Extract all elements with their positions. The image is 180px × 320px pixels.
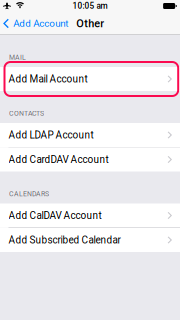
staticText: Add LDAP Account — [8, 129, 93, 141]
staticText: CONTACTS — [9, 109, 44, 117]
staticText: Add Mail Account — [8, 73, 87, 85]
button[interactable]: Add Account — [0, 15, 68, 32]
button[interactable]: Add CalDAV Account — [0, 203, 180, 227]
button[interactable]: Add LDAP Account — [0, 123, 180, 147]
staticText: 10:05 am — [72, 1, 107, 11]
staticText: Add Subscribed Calendar — [8, 234, 120, 246]
staticText: Add Account — [13, 18, 68, 29]
staticText: Other — [76, 17, 104, 30]
staticText: Add CalDAV Account — [8, 210, 101, 221]
staticText: MAIL — [9, 53, 26, 61]
button[interactable]: Add Mail Account — [0, 67, 180, 91]
staticText: CALENDARS — [9, 190, 49, 198]
staticText: Add CardDAV Account — [8, 154, 108, 165]
button[interactable]: Add CardDAV Account — [0, 147, 180, 171]
button[interactable]: Add Subscribed Calendar — [0, 228, 180, 252]
